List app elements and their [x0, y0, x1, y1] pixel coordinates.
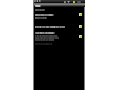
staticText: Back-up van mijn instellingen maken: [35, 26, 65, 28]
staticText: Persoonlijke gegevens: [35, 42, 52, 44]
staticText: Tekstbericht weergeven: [35, 14, 53, 16]
staticText: Back-up en herstel: [35, 17, 47, 19]
staticText: 13:07: [77, 1, 81, 3]
staticText: Als een app opnieuw wordt geïnstalleerd,: [35, 35, 58, 37]
staticText: Back-up van mijn instellingen maken: [35, 25, 65, 27]
button[interactable]: [34, 41, 85, 46]
staticText: Mijn gegevens: [35, 9, 45, 11]
staticText: worden instellingen en gegevens hersteld: [35, 38, 59, 40]
staticText: waarvan een back-up is gemaakt: [35, 40, 54, 42]
staticText: Back-up en herstel: [35, 18, 47, 20]
staticText: 13:07: [77, 0, 81, 2]
staticText: Mijn gegevens: [35, 8, 45, 10]
staticText: Automatisch terugzetten: [35, 31, 54, 33]
staticText: worden instellingen en gegevens hersteld: [35, 37, 59, 39]
staticText: Persoonlijke gegevens: [35, 43, 52, 45]
staticText: waarvan een back-up is gemaakt: [35, 39, 54, 41]
button[interactable]: [34, 21, 85, 28]
button[interactable]: Toggle setting: [79, 13, 82, 16]
staticText: Privacy: [35, 5, 40, 7]
staticText: Automatisch terugzetten: [35, 32, 54, 34]
button[interactable]: [34, 11, 85, 17]
staticText: Als een app opnieuw wordt geïnstalleerd,: [35, 36, 58, 38]
button[interactable]: Toggle setting: [79, 35, 82, 38]
staticText: Tekstbericht weergeven: [35, 13, 53, 15]
staticText: Privacy: [35, 4, 40, 6]
button[interactable]: Toggle setting: [79, 25, 82, 28]
button[interactable]: [34, 30, 85, 42]
